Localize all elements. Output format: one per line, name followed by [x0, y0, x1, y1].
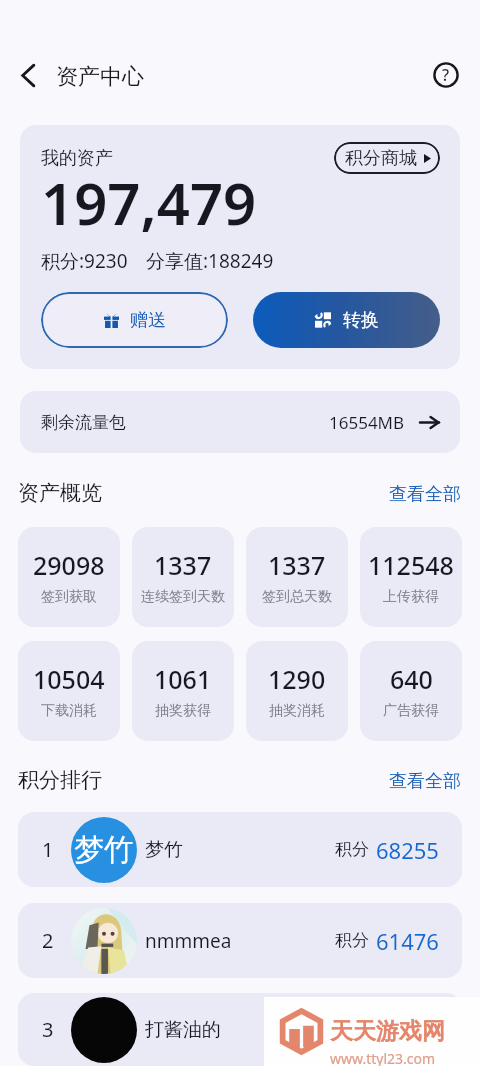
staticText: 签到获取 [41, 588, 97, 606]
staticText: 查看全部 [389, 770, 461, 790]
staticText: 积分排行 [18, 767, 102, 793]
button[interactable]: 剩余流量包 [20, 391, 460, 453]
button[interactable]: Back [10, 57, 46, 93]
button[interactable]: 2 [18, 903, 462, 978]
staticText: 签到总天数 [262, 588, 332, 606]
staticText: 3 [42, 1016, 62, 1043]
button[interactable]: 1290 [246, 641, 348, 741]
staticText: 积分 [335, 930, 369, 951]
button[interactable]: 29098 [18, 527, 120, 627]
staticText: 61476 [376, 926, 439, 956]
staticText: 剩余流量包 [41, 412, 126, 433]
button[interactable]: 转换 [253, 292, 440, 348]
button[interactable]: 3 [18, 993, 462, 1066]
button[interactable]: 112548 [360, 527, 462, 627]
button[interactable]: 1061 [132, 641, 234, 741]
staticText: 资产中心 [56, 63, 144, 91]
staticText: 1337 [154, 548, 212, 582]
staticText: 68255 [376, 835, 439, 865]
staticText: 资产概览 [18, 480, 102, 506]
staticText: 29098 [33, 548, 105, 582]
staticText: 积分 [335, 839, 369, 860]
staticText: 112548 [368, 548, 454, 582]
staticText: www.ttyl23.com [330, 1049, 436, 1066]
staticText: 积分商城 [345, 147, 417, 170]
button[interactable]: 查看全部 [379, 479, 480, 507]
button[interactable]: 1337 [246, 527, 348, 627]
staticText: 打酱油的 [145, 1018, 221, 1042]
staticText: 1290 [268, 662, 326, 696]
button[interactable]: 积分商城 [334, 142, 440, 174]
button[interactable]: 1 [18, 812, 462, 887]
staticText: 连续签到天数 [141, 588, 225, 606]
button[interactable]: 查看全部 [379, 766, 480, 794]
staticText: 查看全部 [389, 483, 461, 503]
staticText: 广告获得 [383, 702, 439, 720]
button[interactable]: 1337 [132, 527, 234, 627]
staticText: 赠送 [130, 309, 166, 332]
button[interactable]: Help [428, 57, 464, 93]
staticText: 梦竹 [145, 838, 183, 862]
staticText: nmmmea [145, 928, 232, 954]
staticText: 抽奖获得 [155, 702, 211, 720]
staticText: ? [442, 64, 450, 86]
staticText: 10504 [33, 662, 105, 696]
staticText: 1061 [154, 662, 212, 696]
staticText: 197,479 [41, 163, 257, 242]
staticText: 16554MB [329, 411, 405, 434]
staticText: 1337 [268, 548, 326, 582]
staticText: 梦竹 [74, 831, 134, 869]
staticText: 上传获得 [383, 588, 439, 606]
staticText: 1 [42, 836, 62, 863]
staticText: 我的资产 [41, 147, 113, 170]
staticText: 转换 [343, 309, 379, 332]
staticText: 640 [390, 662, 433, 696]
staticText: 抽奖消耗 [269, 702, 325, 720]
button[interactable]: 10504 [18, 641, 120, 741]
staticText: 分享值:188249 [146, 248, 274, 274]
staticText: 天天游戏网 [330, 1017, 445, 1046]
staticText: 下载消耗 [41, 702, 97, 720]
staticText: 2 [42, 927, 62, 954]
staticText: 积分:9230 [41, 248, 128, 274]
button[interactable]: 赠送 [41, 292, 228, 348]
button[interactable]: 640 [360, 641, 462, 741]
